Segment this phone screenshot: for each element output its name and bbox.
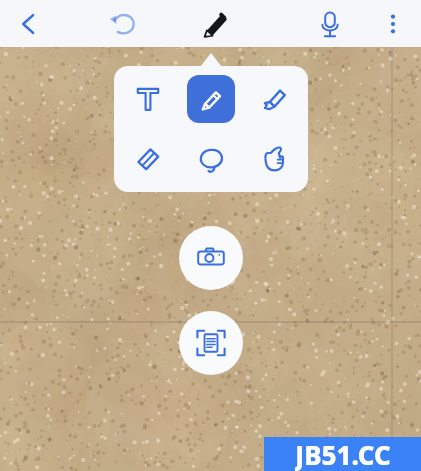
button[interactable]: More options — [371, 2, 415, 46]
button[interactable]: Pen tools — [192, 1, 238, 47]
button[interactable]: Highlighter tool — [250, 75, 298, 123]
staticText: JB51.CC — [295, 437, 391, 471]
button[interactable]: Pen tool — [187, 75, 235, 123]
button[interactable]: Eraser tool — [124, 135, 172, 183]
button[interactable]: Scan document — [179, 311, 243, 375]
button[interactable]: Voice input — [307, 1, 353, 47]
button[interactable]: Undo — [102, 1, 148, 47]
button[interactable]: Hand tool — [250, 135, 298, 183]
button[interactable]: Back — [6, 1, 52, 47]
button[interactable]: Lasso select tool — [187, 135, 235, 183]
button[interactable]: Text tool — [124, 75, 172, 123]
button[interactable]: Take photo — [179, 226, 243, 290]
